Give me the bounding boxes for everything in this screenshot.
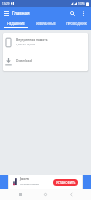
button[interactable]: Menu xyxy=(0,7,12,19)
staticText: Внутренняя память xyxy=(16,37,48,41)
staticText: ПРОВОДНИК xyxy=(66,22,87,26)
button[interactable]: НЕДАВНИЕ xyxy=(0,19,31,30)
button[interactable]: Внутренняя память xyxy=(3,33,88,52)
staticText: Joom xyxy=(20,176,29,181)
button[interactable]: Back xyxy=(66,189,77,200)
staticText: Главная xyxy=(12,10,30,16)
staticText: Лучшие товары xyxy=(20,182,40,185)
button[interactable]: Download xyxy=(3,52,88,71)
staticText: 100% xyxy=(78,2,85,6)
button[interactable]: УСТАНОВИТЬ xyxy=(53,179,78,186)
button[interactable]: Home xyxy=(40,189,51,200)
staticText: УСТАНОВИТЬ xyxy=(56,181,76,185)
button[interactable]: Search xyxy=(66,7,78,19)
button[interactable]: ПРОВОДНИК xyxy=(61,19,91,30)
button[interactable]: More options xyxy=(78,8,88,18)
button[interactable]: ИЗБРАННЫЕ xyxy=(31,19,61,30)
staticText: Download xyxy=(16,58,32,62)
staticText: 13:29 xyxy=(2,2,10,6)
button[interactable]: Joom xyxy=(9,175,82,189)
staticText: НЕДАВНИЕ xyxy=(7,22,25,26)
button[interactable]: Recents xyxy=(15,189,26,200)
staticText: 1,03 ГБ / 16,0 ГБ xyxy=(16,42,36,45)
staticText: ИЗБРАННЫЕ xyxy=(36,22,56,26)
